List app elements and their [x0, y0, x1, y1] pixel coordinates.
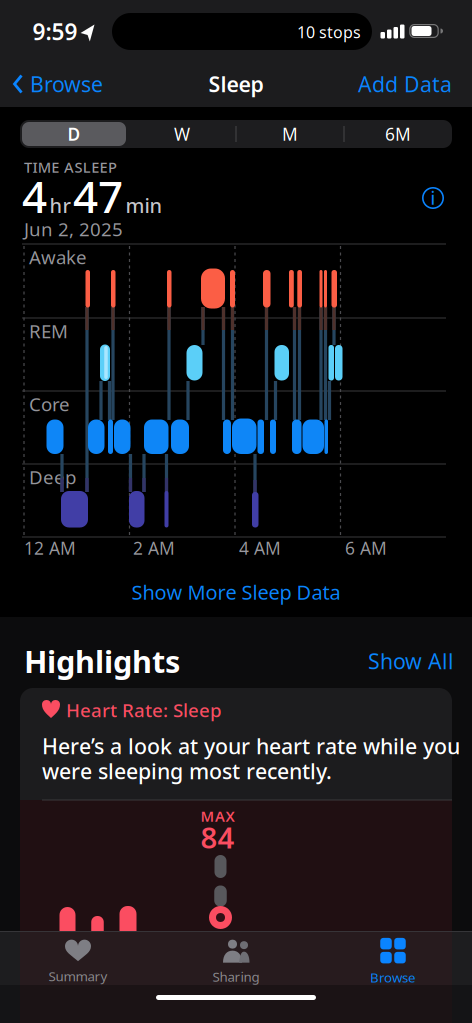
staticText: Show All	[368, 647, 454, 675]
button[interactable]: Sharing	[171, 933, 301, 991]
staticText: MAX	[201, 806, 234, 826]
staticText: Sleep	[208, 70, 263, 98]
staticText: Highlights	[24, 641, 180, 681]
button[interactable]: D	[44, 122, 104, 146]
staticText: Browse	[30, 70, 103, 98]
button[interactable]: M	[260, 122, 320, 146]
staticText: 2 AM	[133, 536, 175, 559]
staticText: Here’s a look at your heart rate while y…	[42, 732, 460, 760]
staticText: 9:59	[32, 16, 77, 46]
button[interactable]: Show All	[368, 647, 454, 675]
staticText: Show More Sleep Data	[131, 579, 340, 605]
staticText: min	[125, 192, 162, 219]
staticText: Browse	[370, 968, 416, 986]
button[interactable]	[22, 122, 126, 146]
button[interactable]: Add Data	[332, 70, 452, 98]
staticText: 84	[200, 817, 234, 856]
staticText: REM	[29, 319, 68, 343]
staticText: 6M	[385, 122, 411, 145]
staticText: i	[430, 186, 435, 209]
staticText: Core	[29, 392, 70, 416]
staticText: Deep	[29, 465, 76, 489]
staticText: Awake	[29, 245, 87, 269]
staticText: 12 AM	[24, 536, 76, 559]
button[interactable]: W	[152, 122, 212, 146]
staticText: Heart Rate: Sleep	[66, 698, 222, 722]
staticText: W	[174, 122, 190, 145]
button[interactable]: Browse	[328, 933, 458, 991]
staticText: 47	[73, 167, 123, 225]
staticText: D	[67, 122, 80, 145]
staticText: TIME ASLEEP	[24, 157, 117, 177]
staticText: hr	[49, 192, 70, 219]
staticText: 6 AM	[345, 536, 387, 559]
staticText: M	[282, 122, 298, 145]
staticText: were sleeping most recently.	[42, 757, 332, 785]
button[interactable]: Browse	[13, 70, 123, 98]
staticText: 10 stops	[297, 21, 361, 43]
button[interactable]: Summary	[13, 933, 143, 991]
button[interactable]: Show More Sleep Data	[131, 579, 340, 605]
staticText: Sharing	[212, 968, 259, 985]
staticText: Jun 2, 2025	[24, 217, 123, 241]
staticText: Summary	[48, 967, 107, 985]
button[interactable]: 6M	[368, 122, 428, 146]
button[interactable]: i	[420, 185, 446, 211]
staticText: 4 AM	[239, 536, 281, 559]
staticText: Add Data	[358, 70, 452, 98]
staticText: 4	[22, 167, 47, 225]
